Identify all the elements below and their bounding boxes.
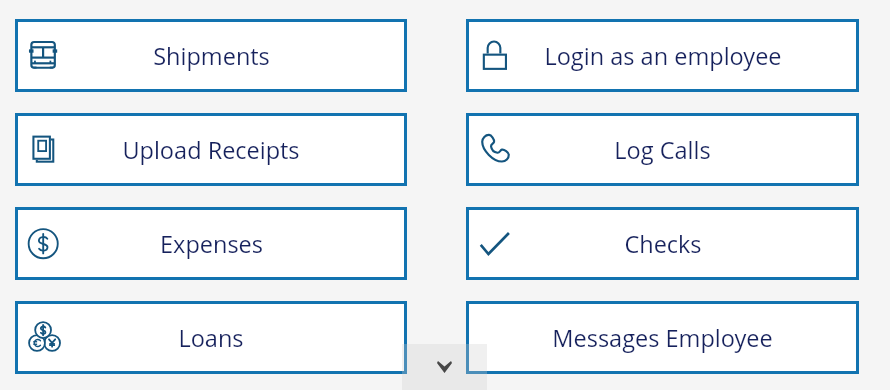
staticText: Expenses: [160, 228, 263, 260]
button[interactable]: Messages Employee: [466, 301, 859, 374]
button[interactable]: Login as an employee: [466, 19, 859, 92]
staticText: Upload Receipts: [122, 134, 300, 166]
button[interactable]: Expenses: [15, 207, 407, 280]
button[interactable]: Upload Receipts: [15, 113, 407, 186]
staticText: Checks: [624, 228, 702, 260]
button[interactable]: Scroll down: [402, 344, 487, 390]
button[interactable]: Loans: [15, 301, 407, 374]
staticText: Loans: [178, 322, 244, 354]
button[interactable]: Checks: [466, 207, 859, 280]
staticText: Login as an employee: [544, 40, 782, 72]
staticText: Shipments: [153, 40, 270, 72]
staticText: Messages Employee: [552, 322, 773, 354]
staticText: Log Calls: [614, 134, 711, 166]
button[interactable]: Log Calls: [466, 113, 859, 186]
button[interactable]: Shipments: [15, 19, 407, 92]
